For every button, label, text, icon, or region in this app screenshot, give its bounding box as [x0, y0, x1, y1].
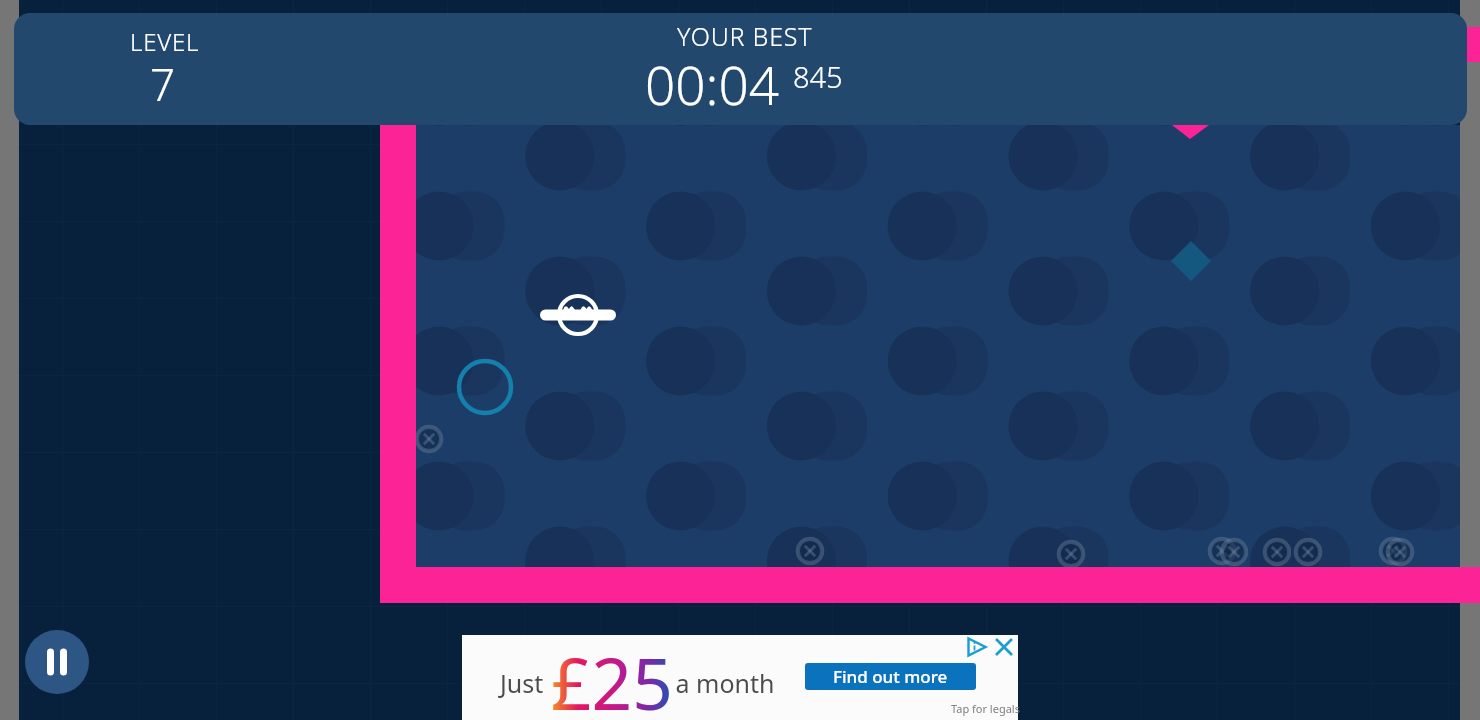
staticText: Tap for legals — [951, 701, 1020, 716]
staticText: 7 — [150, 54, 176, 114]
staticText: £25 — [551, 634, 673, 719]
staticText: LEVEL — [130, 25, 200, 58]
staticText: a month — [669, 666, 775, 700]
staticText: YOUR BEST — [677, 19, 813, 53]
button[interactable]: Close ad — [994, 637, 1014, 657]
staticText: 845 — [793, 57, 843, 96]
button[interactable]: Ad choices — [966, 636, 988, 658]
staticText: 00:04 — [645, 48, 779, 120]
staticText: Find out more — [833, 665, 948, 688]
button[interactable]: Tap to jump — [416, 125, 1460, 567]
button[interactable]: Just — [462, 635, 1018, 720]
button[interactable]: Pause — [25, 630, 89, 694]
button[interactable]: Find out more — [805, 663, 976, 690]
staticText: Just — [500, 666, 544, 700]
